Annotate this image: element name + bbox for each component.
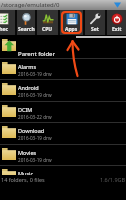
staticText: Search	[18, 26, 35, 33]
staticText: Parent folder	[18, 50, 55, 58]
button[interactable]: DCIM	[0, 101, 126, 123]
other: Expand path	[114, 2, 121, 8]
staticText: 2016-03-19 drw	[18, 178, 52, 184]
button[interactable]: Music	[0, 165, 126, 187]
button[interactable]: Movies	[0, 144, 126, 166]
staticText: Music	[18, 170, 34, 177]
staticText: DCIM	[18, 106, 33, 113]
staticText: Exit	[112, 26, 122, 33]
button[interactable]: Download	[0, 122, 126, 144]
button[interactable]: Check	[0, 10, 15, 35]
staticText: Android	[18, 84, 39, 91]
staticText: 2016-03-22 drw	[18, 114, 52, 120]
button[interactable]: Parent folder	[0, 35, 126, 58]
staticText: Download	[18, 127, 45, 134]
button[interactable]: /storage/emulated/0	[0, 0, 126, 10]
button[interactable]: Exit	[107, 10, 126, 35]
staticText: 2016-03-19 drw	[18, 157, 52, 163]
staticText: 2016-03-19 drw	[18, 92, 52, 98]
button[interactable]: Android	[0, 79, 126, 101]
staticText: CPU	[42, 26, 53, 33]
staticText: 2016-03-19 drw	[18, 71, 52, 77]
staticText: /storage/emulated/0	[1, 1, 60, 9]
button[interactable]: Apps	[60, 10, 83, 35]
button[interactable]: CPU	[37, 10, 58, 35]
staticText: Apps	[65, 26, 78, 33]
staticText: Check	[0, 26, 11, 33]
staticText: 2016-03-19 drw	[18, 135, 52, 141]
staticText: 1.6/1.9GB	[100, 176, 126, 183]
staticText: 14 folders, 0 files	[1, 176, 45, 183]
button[interactable]: Set	[85, 10, 105, 35]
staticText: Alarms	[18, 63, 37, 70]
staticText: Movies	[18, 149, 37, 156]
button[interactable]: Alarms	[0, 58, 126, 80]
staticText: Set	[91, 26, 99, 33]
button[interactable]: Search	[17, 10, 35, 35]
